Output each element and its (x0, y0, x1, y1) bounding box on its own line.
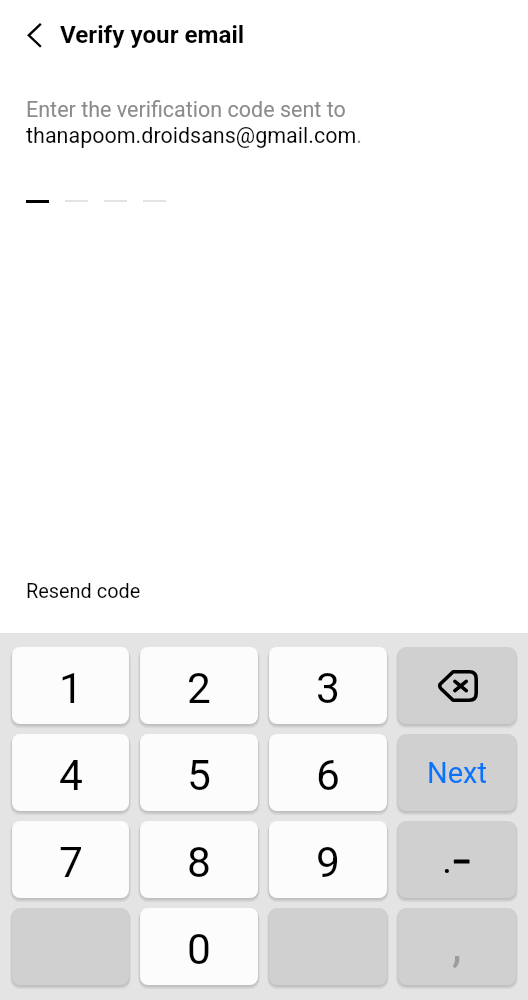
button[interactable]: 0 (140, 908, 258, 985)
button[interactable]: Period and dash (398, 821, 516, 898)
button[interactable]: Back (10, 12, 56, 58)
staticText: 0 (187, 925, 211, 975)
staticText: 7 (59, 838, 83, 888)
staticText: Verify your email (60, 21, 245, 49)
staticText: Enter the verification code sent to than… (26, 97, 362, 148)
staticText: Next (427, 756, 487, 790)
staticText: 3 (316, 664, 340, 714)
button[interactable]: 3 (269, 647, 387, 724)
button[interactable]: 1 (12, 647, 129, 724)
button[interactable]: Backspace (398, 647, 516, 724)
button[interactable]: Resend code (20, 578, 147, 605)
staticText: , (452, 916, 462, 972)
staticText: 8 (187, 838, 211, 888)
button[interactable]: 7 (12, 821, 129, 898)
button[interactable]: 5 (140, 734, 258, 811)
staticText: 5 (187, 751, 211, 801)
staticText: 2 (187, 664, 211, 714)
button[interactable]: 9 (269, 821, 387, 898)
staticText: Resend code (26, 580, 141, 603)
staticText: 1 (59, 664, 83, 714)
button[interactable]: 4 (12, 734, 129, 811)
button[interactable]: 8 (140, 821, 258, 898)
button[interactable]: Comma (398, 908, 516, 985)
staticText: 4 (59, 751, 83, 801)
button[interactable]: 2 (140, 647, 258, 724)
button[interactable]: Next (398, 734, 516, 811)
staticText: 6 (316, 751, 340, 801)
button[interactable]: 6 (269, 734, 387, 811)
staticText: 9 (316, 838, 340, 888)
